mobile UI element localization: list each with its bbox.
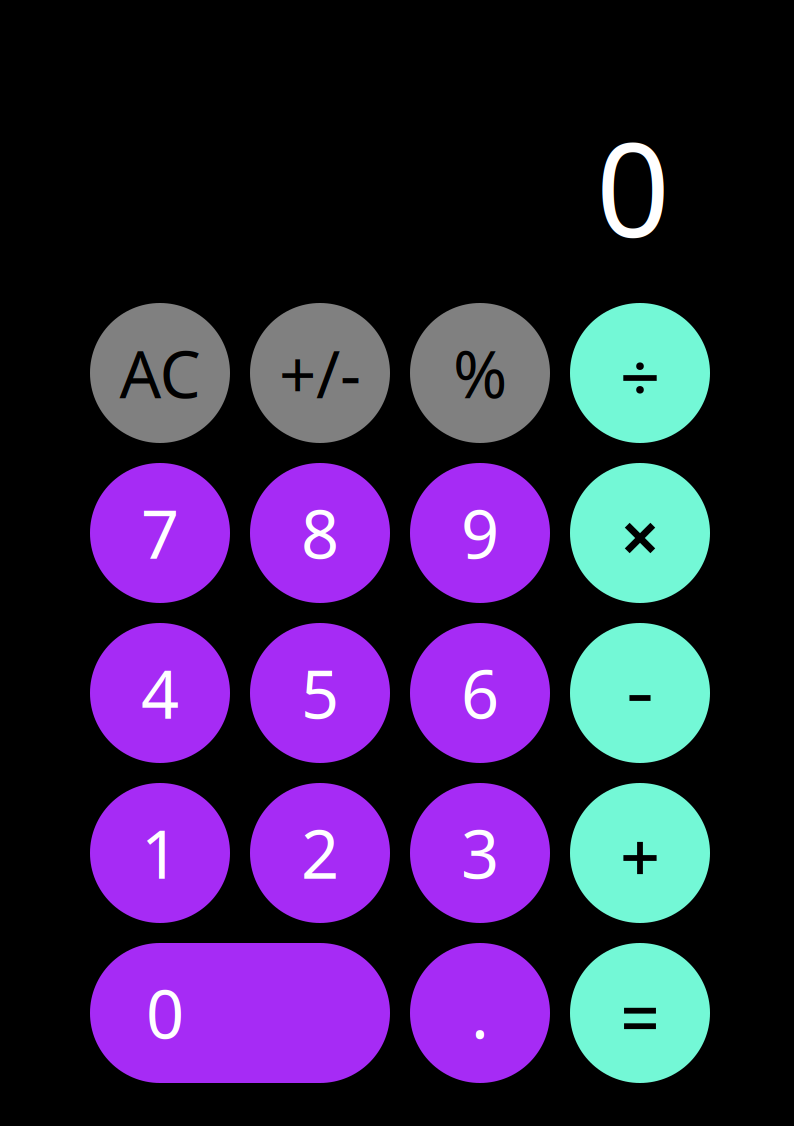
button[interactable]: 3 <box>410 783 550 923</box>
staticText: 0 <box>596 101 670 273</box>
staticText: 8 <box>301 489 339 577</box>
button[interactable]: Subtract <box>570 623 710 763</box>
button[interactable]: 7 <box>90 463 230 603</box>
button[interactable]: Equals <box>570 943 710 1083</box>
button[interactable]: +/- <box>250 303 390 443</box>
button[interactable]: 5 <box>250 623 390 763</box>
staticText: AC <box>119 330 200 416</box>
staticText: 2 <box>301 809 339 897</box>
button[interactable]: % <box>410 303 550 443</box>
staticText: 3 <box>461 809 499 897</box>
button[interactable]: 9 <box>410 463 550 603</box>
staticText: 1 <box>141 809 179 897</box>
button[interactable]: AC <box>90 303 230 443</box>
staticText: 4 <box>141 649 179 737</box>
button[interactable]: 4 <box>90 623 230 763</box>
button[interactable]: 6 <box>410 623 550 763</box>
staticText: . <box>471 969 489 1057</box>
staticText: 5 <box>301 649 339 737</box>
button[interactable]: 0 <box>90 943 390 1083</box>
staticText: +/- <box>279 330 361 416</box>
staticText: 0 <box>146 969 184 1057</box>
button[interactable]: Multiply <box>570 463 710 603</box>
staticText: % <box>453 330 507 416</box>
staticText: 6 <box>461 649 499 737</box>
button[interactable]: 1 <box>90 783 230 923</box>
staticText: 9 <box>461 489 499 577</box>
button[interactable]: 8 <box>250 463 390 603</box>
button[interactable]: 2 <box>250 783 390 923</box>
button[interactable]: . <box>410 943 550 1083</box>
button[interactable]: Add <box>570 783 710 923</box>
staticText: 7 <box>141 489 179 577</box>
button[interactable]: Divide <box>570 303 710 443</box>
